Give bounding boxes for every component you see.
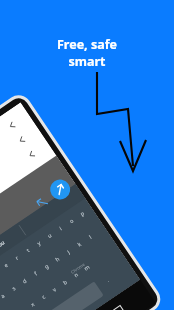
button[interactable]: Free, safe, smart keyboard promo <box>0 0 174 310</box>
